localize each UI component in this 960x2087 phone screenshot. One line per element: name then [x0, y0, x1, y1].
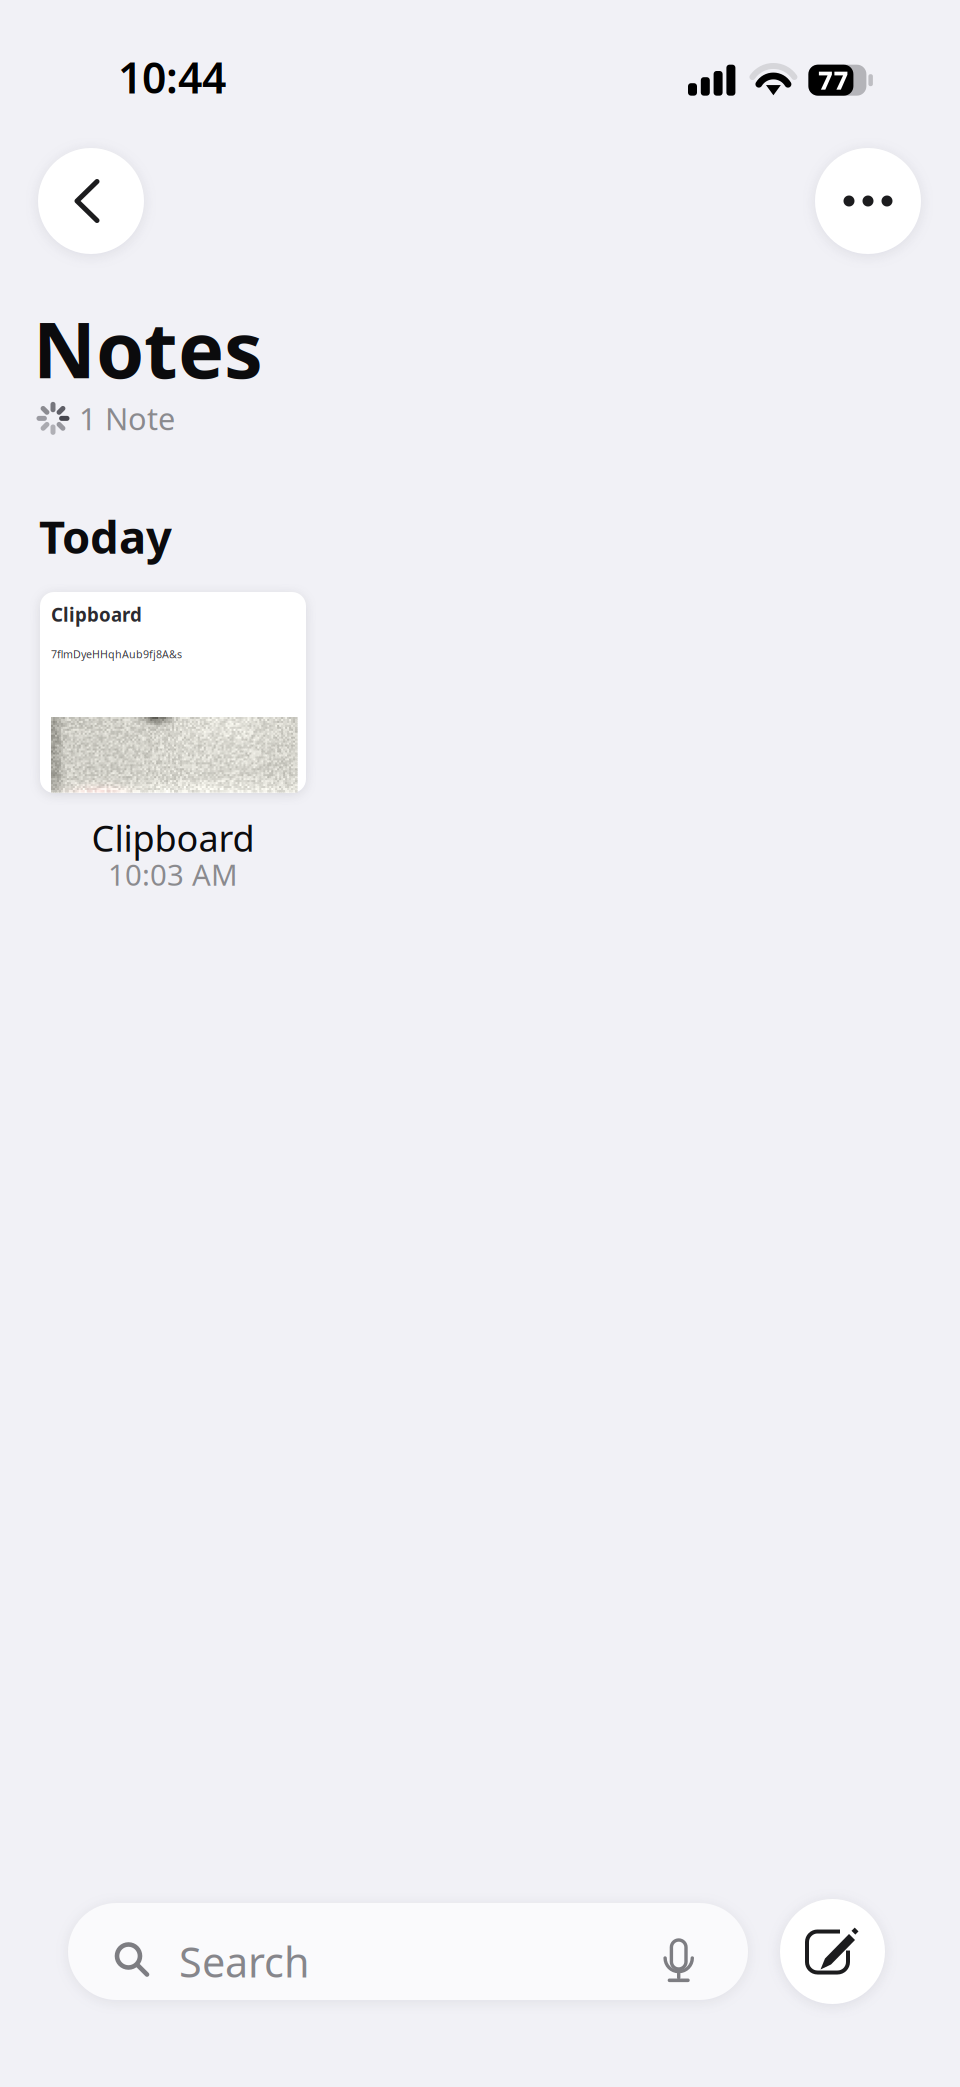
button[interactable]: Back: [38, 148, 144, 254]
staticText: 10:03 AM: [108, 855, 238, 894]
staticText: 1 Note: [79, 398, 175, 439]
button[interactable]: Search: [68, 1903, 748, 2000]
staticText: 10:44: [118, 49, 226, 105]
button[interactable]: New Note: [780, 1899, 885, 2004]
staticText: Search: [179, 1934, 310, 1989]
staticText: Notes: [33, 297, 263, 400]
staticText: 7flmDyeHHqhAub9fj8A&s: [51, 647, 182, 661]
staticText: Today: [39, 506, 172, 566]
staticText: Clipboard: [91, 814, 254, 862]
button[interactable]: More options: [815, 148, 921, 254]
button[interactable]: Clipboard, 10:03 AM: [40, 592, 306, 894]
staticText: Clipboard: [51, 602, 142, 627]
